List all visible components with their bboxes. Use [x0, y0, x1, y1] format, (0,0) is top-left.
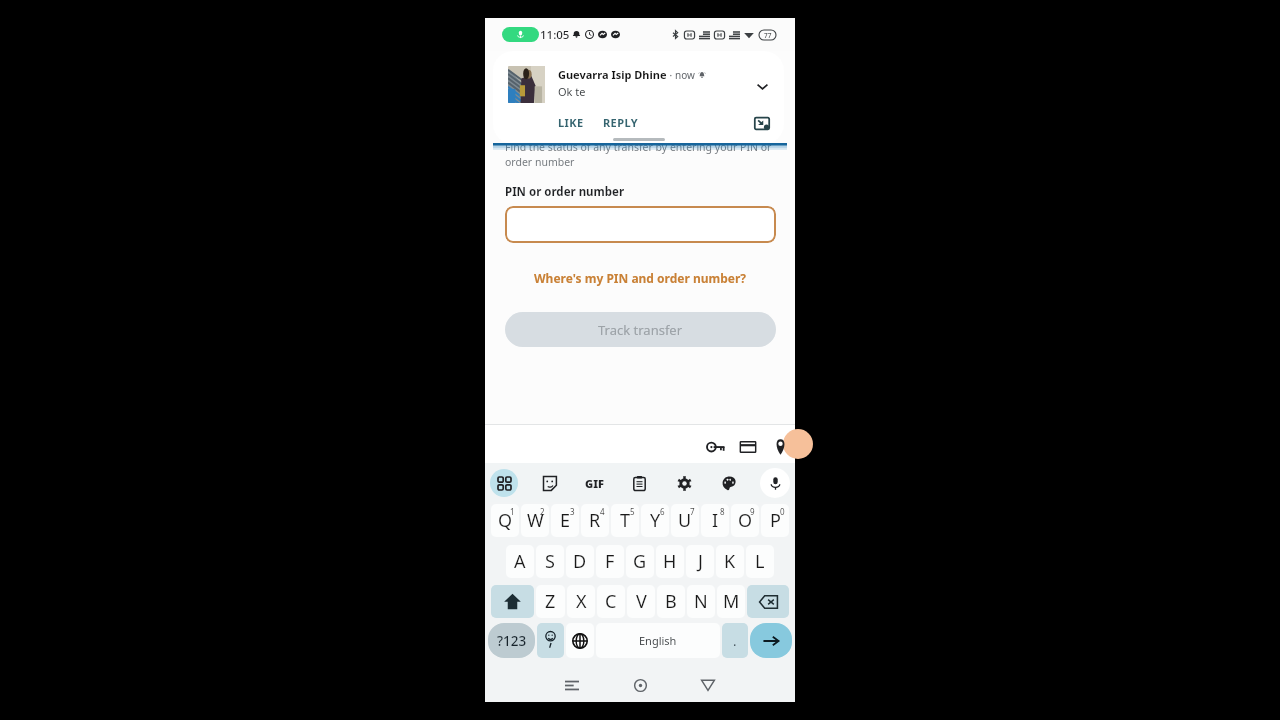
staticText: X: [576, 589, 587, 614]
staticText: I: [712, 508, 719, 533]
staticText: Ok te: [558, 84, 586, 99]
button[interactable]: S: [536, 545, 564, 578]
button[interactable]: H: [656, 545, 684, 578]
staticText: Z: [545, 589, 556, 614]
button[interactable]: Expand notification: [751, 75, 773, 97]
button[interactable]: Where's my PIN and order number?: [505, 267, 776, 289]
staticText: .: [733, 632, 737, 650]
staticText: T: [620, 508, 631, 533]
button[interactable]: Voice input: [760, 468, 790, 498]
staticText: F: [605, 549, 615, 574]
button[interactable]: X: [567, 585, 595, 618]
button[interactable]: O: [731, 504, 759, 537]
button[interactable]: Clipboard: [625, 469, 653, 497]
button[interactable]: W: [521, 504, 549, 537]
staticText: 2: [540, 506, 545, 517]
staticText: K: [724, 549, 736, 574]
button[interactable]: Track transfer: [505, 312, 776, 347]
staticText: H: [663, 549, 677, 574]
staticText: 7: [690, 506, 695, 517]
button[interactable]: T: [611, 504, 639, 537]
button[interactable]: REPLY: [603, 115, 638, 130]
button[interactable]: B: [657, 585, 685, 618]
button[interactable]: L: [746, 545, 774, 578]
button[interactable]: ?123: [488, 623, 535, 658]
button[interactable]: Recent apps: [555, 668, 589, 702]
button[interactable]: Backspace: [747, 585, 789, 618]
staticText: N: [694, 589, 708, 614]
staticText: 3: [570, 506, 575, 517]
staticText: now: [675, 68, 695, 82]
staticText: PIN or order number: [505, 184, 625, 200]
staticText: J: [698, 549, 703, 574]
staticText: English: [639, 633, 677, 648]
staticText: S: [545, 549, 555, 574]
button[interactable]: K: [716, 545, 744, 578]
staticText: ?123: [497, 632, 527, 650]
staticText: M: [723, 589, 740, 614]
button[interactable]: Q: [491, 504, 519, 537]
button[interactable]: Shift: [491, 585, 534, 618]
button[interactable]: .: [722, 623, 748, 658]
staticText: R: [589, 508, 601, 533]
button[interactable]: Guevarra Isip Dhine: [493, 51, 784, 144]
staticText: 1: [510, 506, 515, 517]
staticText: 9: [750, 506, 755, 517]
button[interactable]: GIF: [580, 469, 608, 497]
staticText: Find the status of any transfer by enter…: [505, 140, 778, 169]
button[interactable]: Change language: [566, 623, 594, 658]
button[interactable]: English: [596, 623, 720, 658]
button[interactable]: J: [686, 545, 714, 578]
button[interactable]: F: [596, 545, 624, 578]
button[interactable]: Home: [623, 668, 657, 702]
button[interactable]: M: [717, 585, 745, 618]
staticText: O: [738, 508, 753, 533]
staticText: V: [636, 589, 647, 614]
button[interactable]: Stickers: [535, 469, 563, 497]
button[interactable]: Passwords: [703, 434, 729, 460]
button[interactable]: Payment cards: [735, 434, 761, 460]
staticText: 6: [660, 506, 665, 517]
button[interactable]: N: [687, 585, 715, 618]
button[interactable]: E: [551, 504, 579, 537]
button[interactable]: D: [566, 545, 594, 578]
staticText: 8: [720, 506, 725, 517]
button[interactable]: Switch toolbar: [490, 469, 518, 497]
button[interactable]: Back: [691, 668, 725, 702]
staticText: L: [755, 549, 765, 574]
button[interactable]: P: [761, 504, 789, 537]
staticText: U: [678, 508, 692, 533]
staticText: E: [560, 508, 571, 533]
button[interactable]: U: [671, 504, 699, 537]
staticText: REPLY: [603, 115, 638, 130]
staticText: A: [514, 549, 526, 574]
button[interactable]: Z: [536, 585, 565, 618]
staticText: Guevarra Isip Dhine: [558, 67, 667, 82]
button[interactable]: Y: [641, 504, 669, 537]
staticText: GIF: [585, 476, 604, 491]
staticText: ·: [667, 68, 675, 82]
staticText: W: [527, 508, 544, 533]
button[interactable]: I: [701, 504, 729, 537]
button[interactable]: G: [626, 545, 654, 578]
button[interactable]: Emoji: [537, 623, 564, 658]
button[interactable]: Addresses: [767, 434, 793, 460]
button[interactable]: R: [581, 504, 609, 537]
button[interactable]: Shrink notification: [752, 113, 772, 133]
button[interactable]: Enter: [750, 623, 792, 658]
button[interactable]: Theme: [715, 469, 743, 497]
button[interactable]: V: [627, 585, 655, 618]
button[interactable]: A: [506, 545, 534, 578]
staticText: Y: [650, 508, 661, 533]
staticText: Where's my PIN and order number?: [534, 270, 747, 286]
button[interactable]: C: [597, 585, 625, 618]
staticText: 77: [764, 31, 772, 40]
button[interactable]: Settings: [670, 469, 698, 497]
staticText: Q: [498, 508, 513, 533]
button[interactable]: LIKE: [558, 115, 584, 130]
staticText: 11:05: [540, 27, 570, 43]
staticText: G: [633, 549, 647, 574]
button[interactable]: [505, 206, 776, 243]
staticText: D: [573, 549, 587, 574]
staticText: LIKE: [558, 115, 584, 130]
